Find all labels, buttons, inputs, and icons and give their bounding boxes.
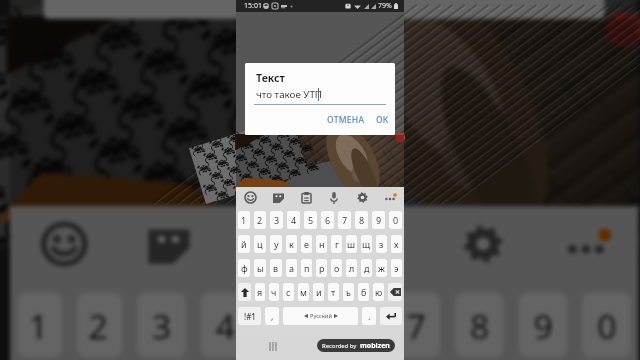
staticText: . (368, 310, 371, 322)
button[interactable]: х (391, 235, 402, 253)
staticText: ОК (376, 114, 389, 126)
button[interactable]: 7 (338, 211, 351, 229)
staticText: ц (257, 238, 263, 250)
button[interactable]: б (358, 283, 369, 301)
button[interactable]: 1 (17, 293, 62, 357)
button[interactable]: э (391, 259, 402, 277)
button[interactable]: 4 (201, 293, 249, 357)
button[interactable]: ш (346, 235, 357, 253)
staticText: ч (271, 286, 277, 298)
button[interactable]: ОК (374, 112, 391, 128)
button[interactable]: Clipboard (219, 206, 324, 282)
button[interactable]: п (301, 259, 312, 277)
button[interactable]: 9 (519, 293, 567, 357)
button[interactable]: 9 (372, 211, 385, 229)
button[interactable]: 8 (355, 211, 368, 229)
button[interactable]: 5 (264, 293, 313, 357)
button[interactable]: с (283, 283, 294, 301)
button[interactable]: н (316, 235, 327, 253)
button[interactable]: Voice input (320, 187, 348, 208)
staticText: mobizen (360, 341, 390, 351)
button[interactable]: л (346, 259, 357, 277)
staticText: 79% (378, 1, 392, 11)
button[interactable]: . (362, 307, 376, 325)
button[interactable]: я (255, 283, 265, 301)
button[interactable]: 2 (77, 293, 122, 357)
button[interactable]: у (270, 235, 282, 253)
button[interactable]: Voice input (324, 206, 429, 282)
button[interactable]: ч (269, 283, 279, 301)
staticText: р (319, 262, 325, 274)
button[interactable]: з (376, 235, 387, 253)
button[interactable]: и (313, 283, 324, 301)
button[interactable]: ф (238, 259, 250, 277)
button[interactable]: 7 (391, 293, 440, 357)
button[interactable]: в (270, 259, 282, 277)
button[interactable]: Emoji (10, 206, 115, 282)
button[interactable]: 8 (455, 293, 504, 357)
button[interactable]: 2 (254, 211, 266, 229)
button[interactable]: 6 (321, 211, 334, 229)
button[interactable]: 4 (287, 211, 300, 229)
staticText: ь (346, 286, 351, 298)
button[interactable]: Settings (348, 187, 376, 208)
staticText: 3 (152, 303, 174, 347)
button[interactable]: т (328, 283, 339, 301)
button[interactable]: Recent apps (266, 340, 280, 352)
button[interactable]: More options (376, 187, 404, 208)
button[interactable]: ж (376, 259, 387, 277)
staticText: 2 (257, 214, 263, 226)
button[interactable]: Settings (429, 206, 534, 282)
button[interactable]: а (286, 259, 297, 277)
button[interactable]: Enter (380, 307, 402, 325)
staticText: 7 (342, 214, 348, 226)
button[interactable]: о (331, 259, 342, 277)
button[interactable]: 3 (137, 293, 186, 357)
staticText: 9 (534, 303, 556, 347)
button[interactable]: ОТМЕНА (325, 112, 367, 128)
staticText: т (331, 286, 336, 298)
button[interactable]: д (361, 259, 372, 277)
staticText: 15:01 (244, 1, 262, 11)
staticText: , (271, 310, 274, 322)
button[interactable]: ц (254, 235, 266, 253)
button[interactable]: Emoji (236, 187, 264, 208)
button[interactable]: Clipboard (292, 187, 320, 208)
button[interactable]: ю (373, 283, 384, 301)
button[interactable]: Stickers (264, 187, 292, 208)
button[interactable]: г (331, 235, 342, 253)
button[interactable]: щ (361, 235, 372, 253)
staticText: з (379, 238, 384, 250)
button[interactable]: Stickers (115, 206, 219, 282)
button[interactable]: р (316, 259, 327, 277)
staticText: д (364, 262, 370, 274)
staticText: е (304, 238, 309, 250)
button[interactable]: 1 (238, 211, 250, 229)
button[interactable]: ь (343, 283, 354, 301)
button[interactable]: ы (254, 259, 266, 277)
staticText: я (257, 286, 263, 298)
button[interactable]: More options (534, 206, 638, 282)
button[interactable]: к (286, 235, 297, 253)
button[interactable]: м (298, 283, 309, 301)
staticText: х (394, 238, 399, 250)
button[interactable]: Backspace (388, 283, 402, 301)
staticText: н (319, 238, 325, 250)
button[interactable]: 0 (582, 293, 631, 357)
button[interactable]: , (265, 307, 279, 325)
button[interactable]: Space (283, 307, 358, 325)
button[interactable]: 0 (389, 211, 402, 229)
staticText: ф (241, 262, 248, 274)
button[interactable]: й (238, 235, 250, 253)
staticText: Текст (256, 71, 285, 85)
staticText: 5 (279, 303, 302, 347)
button[interactable]: 5 (304, 211, 317, 229)
button[interactable]: 6 (328, 293, 376, 357)
staticText: 0 (597, 303, 620, 347)
staticText: 6 (343, 303, 365, 347)
button[interactable]: Shift (238, 283, 251, 301)
button[interactable]: е (301, 235, 312, 253)
button[interactable]: !#1 (238, 307, 261, 325)
button[interactable]: 3 (270, 211, 283, 229)
staticText: о (334, 262, 340, 274)
